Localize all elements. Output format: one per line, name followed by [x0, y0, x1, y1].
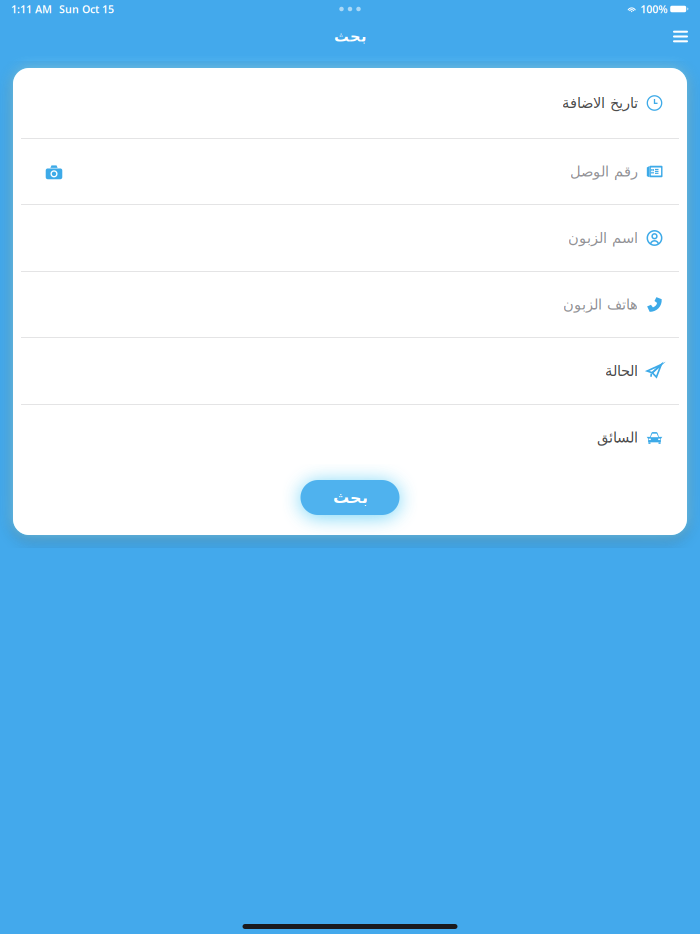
staticText: بحث: [332, 488, 367, 507]
button[interactable]: Scan receipt with camera: [37, 154, 71, 188]
staticText: تاريخ الاضافة: [561, 95, 637, 111]
staticText: الحالة: [604, 363, 637, 379]
button[interactable]: Menu: [661, 19, 699, 53]
staticText: السائق: [596, 429, 637, 446]
staticText: اسم الزبون: [567, 230, 637, 246]
button[interactable]: الحالة: [13, 338, 687, 404]
staticText: بحث: [333, 28, 366, 45]
staticText: هاتف الزبون: [562, 296, 637, 313]
button[interactable]: هاتف الزبون: [13, 272, 687, 337]
button[interactable]: بحث: [300, 480, 399, 515]
staticText: Sun Oct 15: [59, 2, 114, 16]
staticText: رقم الوصل: [569, 163, 637, 180]
button[interactable]: رقم الوصل: [13, 139, 687, 204]
button[interactable]: تاريخ الاضافة: [13, 68, 687, 138]
button[interactable]: اسم الزبون: [13, 205, 687, 271]
staticText: 1:11 AM: [11, 2, 52, 16]
staticText: 100%: [640, 2, 667, 16]
button[interactable]: السائق: [13, 405, 687, 470]
